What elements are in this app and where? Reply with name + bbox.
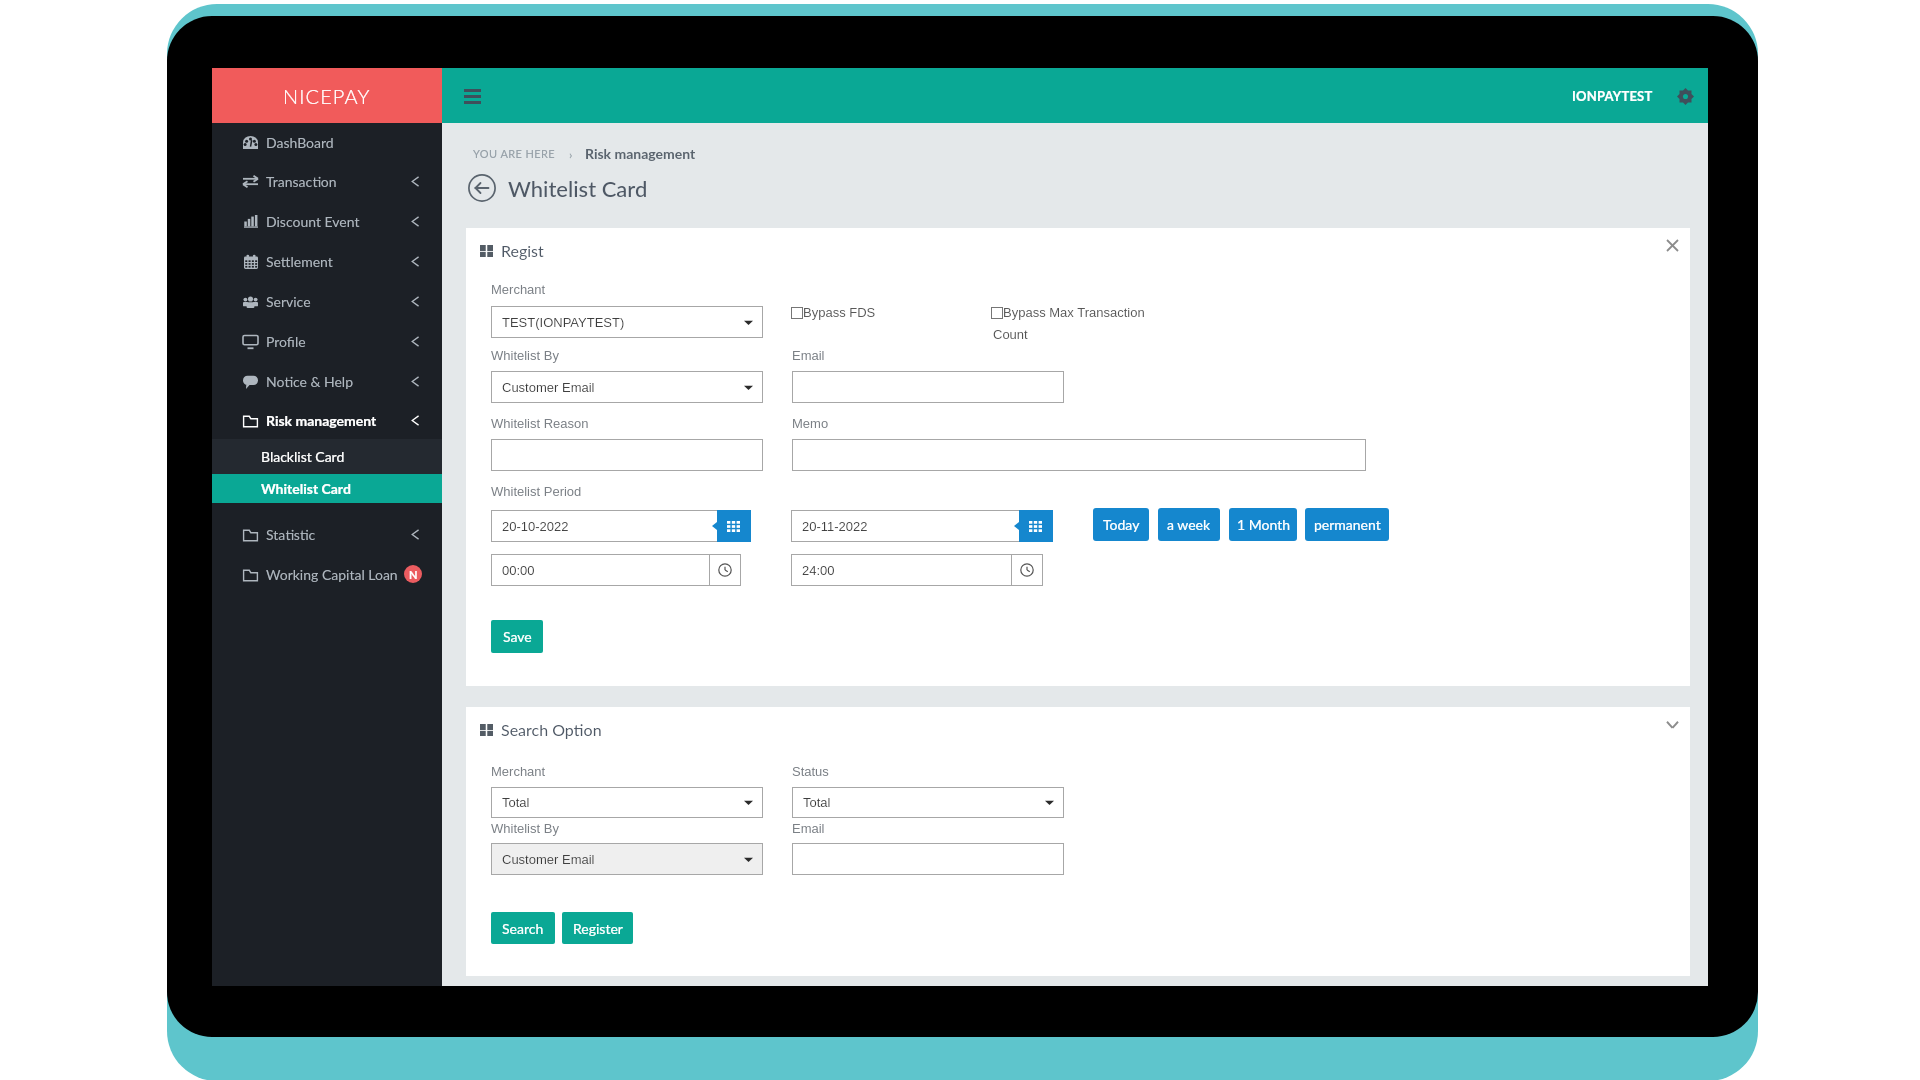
button[interactable]: 24:00 <box>791 554 1012 586</box>
staticText: YOU ARE HERE <box>473 147 556 160</box>
staticText: Discount Event <box>266 213 360 230</box>
staticText: Settlement <box>266 253 333 270</box>
button[interactable]: Discount Event <box>212 201 442 241</box>
staticText: Transaction <box>266 173 337 190</box>
staticText: Memo <box>792 416 829 431</box>
staticText: a week <box>1167 516 1211 533</box>
staticText: Status <box>792 764 829 779</box>
button[interactable]: permanent <box>1305 508 1389 541</box>
staticText: Email <box>792 348 825 363</box>
staticText: Blacklist Card <box>261 448 345 465</box>
staticText: Customer Email <box>502 852 595 867</box>
staticText: Search Option <box>501 720 602 739</box>
staticText: Merchant <box>491 764 546 779</box>
button[interactable] <box>792 843 1064 875</box>
button[interactable]: Statistic <box>212 514 442 554</box>
button[interactable]: Pick date <box>1014 510 1053 542</box>
staticText: permanent <box>1314 516 1381 533</box>
button[interactable]: Profile <box>212 321 442 361</box>
button[interactable] <box>491 439 763 471</box>
staticText: Service <box>266 293 311 310</box>
button[interactable]: Bypass Max Transaction <box>991 305 1145 320</box>
staticText: TEST(IONPAYTEST) <box>502 315 625 330</box>
button[interactable]: Total <box>491 787 763 818</box>
staticText: Bypass FDS <box>803 305 876 320</box>
button[interactable]: Collapse <box>1659 711 1685 737</box>
button[interactable]: Back <box>468 174 496 202</box>
staticText: 00:00 <box>502 563 535 578</box>
staticText: 20-10-2022 <box>502 519 569 534</box>
button[interactable]: Service <box>212 281 442 321</box>
button[interactable]: Customer Email <box>491 371 763 403</box>
staticText: Merchant <box>491 282 546 297</box>
staticText: Today <box>1103 516 1140 533</box>
button[interactable]: TEST(IONPAYTEST) <box>491 306 763 338</box>
button[interactable]: Total <box>792 787 1064 818</box>
staticText: Notice & Help <box>266 373 354 390</box>
staticText: Regist <box>501 241 544 260</box>
button[interactable]: 20-11-2022 <box>791 510 1020 542</box>
staticText: Total <box>803 795 831 810</box>
button[interactable]: Today <box>1093 508 1149 541</box>
button[interactable]: DashBoard <box>212 122 442 162</box>
staticText: 20-11-2022 <box>802 519 868 534</box>
button[interactable]: Bypass FDS <box>791 305 876 320</box>
staticText: Whitelist Reason <box>491 416 589 431</box>
staticText: Customer Email <box>502 380 595 395</box>
staticText: 1 Month <box>1237 516 1290 533</box>
staticText: › <box>569 147 573 161</box>
button[interactable]: Pick time <box>709 554 741 586</box>
button[interactable] <box>792 439 1366 471</box>
button[interactable]: Menu <box>450 74 494 118</box>
staticText: Risk management <box>585 145 696 162</box>
button[interactable]: Risk management <box>212 400 442 440</box>
button[interactable]: a week <box>1158 508 1220 541</box>
staticText: Total <box>502 795 530 810</box>
button[interactable]: Settlement <box>212 241 442 281</box>
button[interactable]: Notice & Help <box>212 361 442 401</box>
button[interactable]: 20-10-2022 <box>491 510 718 542</box>
button[interactable]: Settings <box>1670 81 1700 111</box>
staticText: 24:00 <box>802 563 835 578</box>
staticText: Whitelist Card <box>508 175 648 201</box>
button[interactable]: Working Capital Loan <box>212 554 442 594</box>
button[interactable]: Search <box>491 912 555 944</box>
staticText: Count <box>993 327 1028 342</box>
staticText: Whitelist Period <box>491 484 582 499</box>
staticText: DashBoard <box>266 134 334 151</box>
staticText: Bypass Max Transaction <box>1003 305 1145 320</box>
staticText: IONPAYTEST <box>1572 88 1653 104</box>
staticText: Whitelist By <box>491 821 559 836</box>
staticText: Working Capital Loan <box>266 566 398 583</box>
staticText: Statistic <box>266 526 316 543</box>
button[interactable]: Close <box>1659 232 1685 258</box>
staticText: Search <box>502 920 544 937</box>
staticText: Risk management <box>266 412 377 429</box>
button[interactable]: Pick time <box>1011 554 1043 586</box>
staticText: Save <box>503 628 532 645</box>
button[interactable]: Blacklist Card <box>212 439 442 474</box>
button[interactable] <box>792 371 1064 403</box>
staticText: Register <box>573 920 623 937</box>
button[interactable]: NICEPAY <box>212 68 442 123</box>
staticText: Whitelist By <box>491 348 559 363</box>
button[interactable]: Transaction <box>212 161 442 201</box>
button[interactable]: Pick date <box>712 510 751 542</box>
button[interactable]: Save <box>491 620 543 653</box>
button[interactable]: Customer Email <box>491 843 763 875</box>
staticText: Whitelist Card <box>261 480 351 497</box>
staticText: Email <box>792 821 825 836</box>
button[interactable]: 1 Month <box>1229 508 1297 541</box>
staticText: N <box>409 568 418 581</box>
button[interactable]: Register <box>562 912 633 944</box>
button[interactable]: Whitelist Card <box>212 474 442 503</box>
staticText: NICEPAY <box>283 84 371 108</box>
staticText: Profile <box>266 333 306 350</box>
button[interactable]: 00:00 <box>491 554 710 586</box>
